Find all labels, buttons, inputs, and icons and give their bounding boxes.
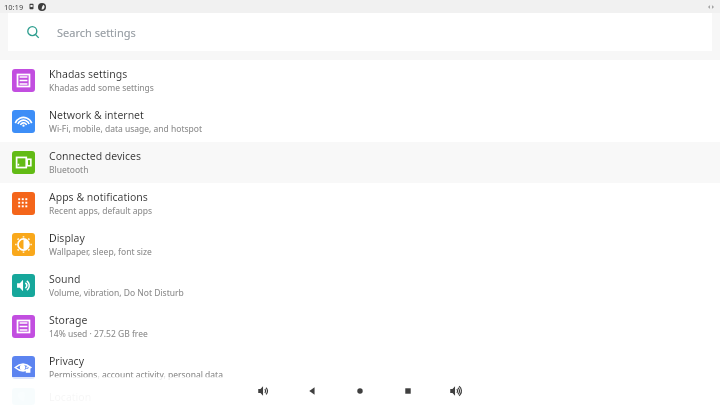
staticText: Bluetooth — [49, 164, 89, 176]
staticText: 14% used · 27.52 GB free — [49, 328, 148, 340]
button[interactable]: Volume down — [251, 378, 277, 404]
staticText: Display — [49, 231, 85, 245]
button[interactable]: Back — [299, 378, 325, 404]
staticText: Recent apps, default apps — [49, 205, 153, 217]
staticText: 10:19 — [4, 2, 24, 12]
button[interactable]: Home — [347, 378, 373, 404]
button[interactable]: Connected devices — [0, 142, 720, 183]
staticText: Volume, vibration, Do Not Disturb — [49, 287, 184, 299]
staticText: Sound — [49, 272, 81, 286]
staticText: Network & internet — [49, 108, 144, 122]
staticText: Apps & notifications — [49, 190, 148, 204]
button[interactable]: Apps & notifications — [0, 183, 720, 224]
button[interactable]: Location — [0, 388, 720, 405]
button[interactable]: Volume up — [443, 378, 469, 404]
button[interactable]: Sound — [0, 265, 720, 306]
staticText: Khadas add some settings — [49, 82, 154, 94]
button[interactable]: Network & internet — [0, 101, 720, 142]
staticText: Search settings — [57, 25, 136, 40]
button[interactable]: Display — [0, 224, 720, 265]
button[interactable]: Storage — [0, 306, 720, 347]
button[interactable]: Khadas settings — [0, 60, 720, 101]
staticText: Connected devices — [49, 149, 142, 163]
button[interactable]: Privacy — [0, 347, 720, 388]
staticText: Storage — [49, 313, 88, 327]
staticText: Wi-Fi, mobile, data usage, and hotspot — [49, 123, 202, 135]
staticText: Wallpaper, sleep, font size — [49, 246, 152, 258]
button[interactable]: Recent apps — [395, 378, 421, 404]
button[interactable]: Search settings — [8, 13, 712, 51]
staticText: Privacy — [49, 354, 85, 368]
staticText: Khadas settings — [49, 67, 128, 81]
staticText: Permissions, account activity, personal … — [49, 369, 223, 381]
